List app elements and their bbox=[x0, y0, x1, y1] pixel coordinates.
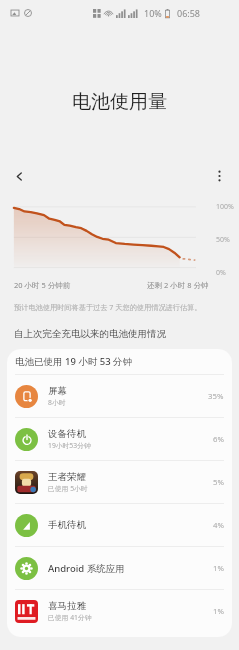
staticText: 8小时 bbox=[48, 398, 66, 407]
staticText: 喜马拉雅 bbox=[48, 600, 86, 612]
staticText: 50% bbox=[216, 235, 230, 245]
staticText: 设备待机 bbox=[48, 428, 86, 440]
button[interactable]: More options bbox=[205, 162, 233, 190]
staticText: 20 小时 5 分钟前 bbox=[14, 280, 71, 290]
staticText: Android 系统应用 bbox=[48, 562, 125, 575]
button[interactable]: 屏幕 bbox=[7, 375, 232, 417]
staticText: 100% bbox=[216, 202, 234, 212]
staticText: 电池已使用 19 小时 53 分钟 bbox=[15, 355, 133, 368]
button[interactable]: Back bbox=[5, 162, 33, 190]
button[interactable]: 手机待机 bbox=[7, 504, 232, 546]
button[interactable]: 喜马拉雅 bbox=[7, 590, 232, 632]
staticText: 10% bbox=[144, 7, 162, 19]
staticText: 王者荣耀 bbox=[48, 471, 86, 483]
staticText: 1% bbox=[213, 563, 224, 574]
button[interactable]: Android 系统应用 bbox=[7, 547, 232, 589]
button[interactable]: 设备待机 bbox=[7, 418, 232, 460]
staticText: 还剩 2 小时 8 分钟 bbox=[147, 280, 209, 290]
staticText: 35% bbox=[208, 391, 224, 402]
staticText: 19小时53分钟 bbox=[48, 441, 91, 450]
staticText: 电池使用量 bbox=[0, 90, 239, 114]
staticText: 已使用 5小时 bbox=[48, 484, 88, 493]
staticText: 06:58 bbox=[177, 7, 201, 19]
staticText: 自上次完全充电以来的电池使用情况 bbox=[14, 328, 239, 340]
staticText: 4% bbox=[213, 520, 224, 531]
staticText: 6% bbox=[213, 434, 224, 445]
button[interactable]: 王者荣耀 bbox=[7, 461, 232, 503]
staticText: 预计电池使用时间将基于过去 7 天您的使用情况进行估算。 bbox=[14, 302, 225, 312]
staticText: 1% bbox=[213, 606, 224, 617]
staticText: 已使用 41分钟 bbox=[48, 613, 92, 622]
staticText: 5% bbox=[213, 477, 224, 488]
staticText: 屏幕 bbox=[48, 385, 67, 397]
staticText: 手机待机 bbox=[48, 519, 86, 531]
staticText: 0% bbox=[216, 268, 226, 278]
